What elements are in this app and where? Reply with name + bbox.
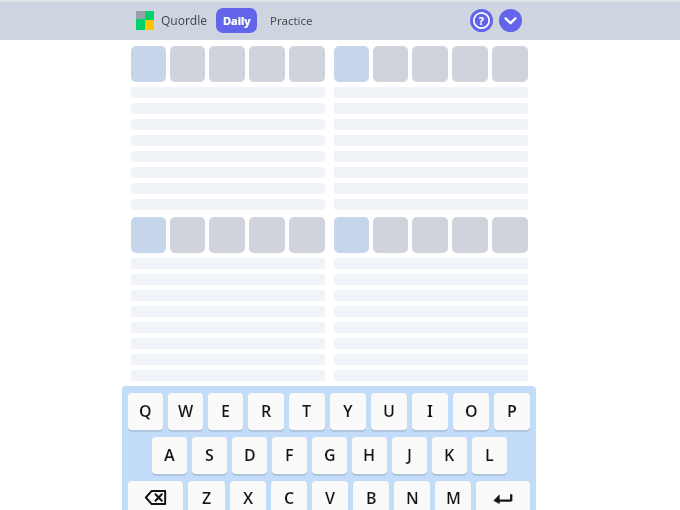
staticText: L: [485, 444, 494, 466]
staticText: J: [407, 444, 412, 466]
staticText: E: [221, 400, 230, 422]
button[interactable]: Letter slot: [170, 217, 205, 253]
button[interactable]: Letter slot: [373, 217, 408, 253]
button[interactable]: Quordle home: [136, 11, 154, 30]
button[interactable]: Letter slot: [209, 46, 245, 82]
staticText: Q: [139, 400, 152, 422]
button[interactable]: O: [453, 393, 489, 430]
button[interactable]: N: [394, 481, 430, 510]
staticText: U: [383, 400, 395, 422]
button[interactable]: V: [312, 481, 348, 510]
staticText: X: [243, 487, 254, 509]
button[interactable]: Letter slot: [412, 46, 448, 82]
staticText: V: [325, 487, 336, 509]
staticText: Daily: [223, 13, 251, 28]
staticText: Y: [343, 400, 353, 422]
button[interactable]: Letter slot: [289, 46, 325, 82]
button[interactable]: Letter slot: [412, 217, 448, 253]
button[interactable]: M: [435, 481, 471, 510]
button[interactable]: Daily: [216, 8, 257, 33]
button[interactable]: S: [192, 437, 227, 474]
button[interactable]: Letter slot: [452, 217, 488, 253]
button[interactable]: U: [371, 393, 407, 430]
staticText: T: [302, 400, 312, 422]
button[interactable]: Backspace: [128, 481, 183, 510]
staticText: N: [406, 487, 419, 509]
button[interactable]: Letter slot: [249, 46, 285, 82]
button[interactable]: Letter slot: [334, 46, 369, 82]
button[interactable]: C: [271, 481, 307, 510]
button[interactable]: B: [353, 481, 389, 510]
button[interactable]: P: [494, 393, 530, 430]
button[interactable]: Letter slot: [452, 46, 488, 82]
button[interactable]: J: [392, 437, 427, 474]
staticText: G: [324, 444, 336, 466]
staticText: Quordle: [161, 12, 208, 28]
button[interactable]: Letter slot: [373, 46, 408, 82]
button[interactable]: E: [208, 393, 243, 430]
staticText: C: [284, 487, 295, 509]
staticText: B: [366, 487, 377, 509]
button[interactable]: Letter slot: [289, 217, 325, 253]
button[interactable]: Letter slot: [492, 46, 528, 82]
staticText: K: [444, 444, 455, 466]
button[interactable]: Letter slot: [131, 46, 166, 82]
button[interactable]: Letter slot: [209, 217, 245, 253]
staticText: M: [446, 487, 461, 509]
button[interactable]: T: [289, 393, 325, 430]
button[interactable]: Q: [128, 393, 163, 430]
button[interactable]: Y: [330, 393, 366, 430]
button[interactable]: Letter slot: [334, 217, 369, 253]
button[interactable]: Practice: [266, 8, 317, 33]
button[interactable]: X: [230, 481, 266, 510]
staticText: ?: [479, 14, 484, 28]
button[interactable]: R: [248, 393, 284, 430]
button[interactable]: F: [272, 437, 307, 474]
staticText: P: [507, 400, 517, 422]
button[interactable]: Letter slot: [170, 46, 205, 82]
button[interactable]: Letter slot: [249, 217, 285, 253]
button[interactable]: A: [152, 437, 187, 474]
button[interactable]: L: [472, 437, 507, 474]
staticText: Z: [202, 487, 212, 509]
button[interactable]: D: [232, 437, 267, 474]
staticText: Practice: [270, 13, 313, 29]
staticText: R: [261, 400, 272, 422]
staticText: D: [244, 444, 256, 466]
staticText: O: [465, 400, 478, 422]
staticText: W: [178, 400, 194, 422]
button[interactable]: G: [312, 437, 347, 474]
button[interactable]: Letter slot: [131, 217, 166, 253]
button[interactable]: Z: [188, 481, 225, 510]
button[interactable]: W: [168, 393, 203, 430]
button[interactable]: K: [432, 437, 467, 474]
staticText: S: [205, 444, 214, 466]
button[interactable]: I: [412, 393, 448, 430]
staticText: F: [285, 444, 294, 466]
button[interactable]: Help: [470, 9, 493, 32]
button[interactable]: H: [352, 437, 387, 474]
staticText: A: [164, 444, 175, 466]
staticText: H: [363, 444, 376, 466]
staticText: I: [427, 400, 433, 422]
button[interactable]: Expand menu: [499, 9, 522, 32]
button[interactable]: Letter slot: [492, 217, 528, 253]
button[interactable]: Enter: [476, 481, 530, 510]
